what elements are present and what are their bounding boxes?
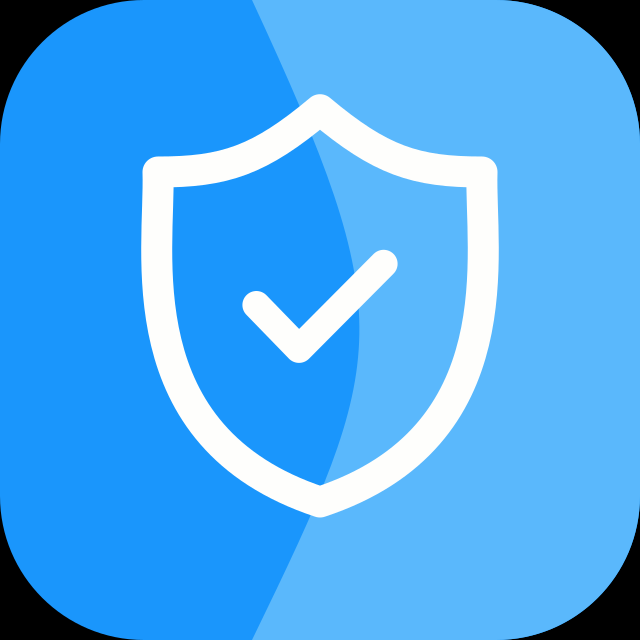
- button[interactable]: Security: [0, 0, 640, 640]
